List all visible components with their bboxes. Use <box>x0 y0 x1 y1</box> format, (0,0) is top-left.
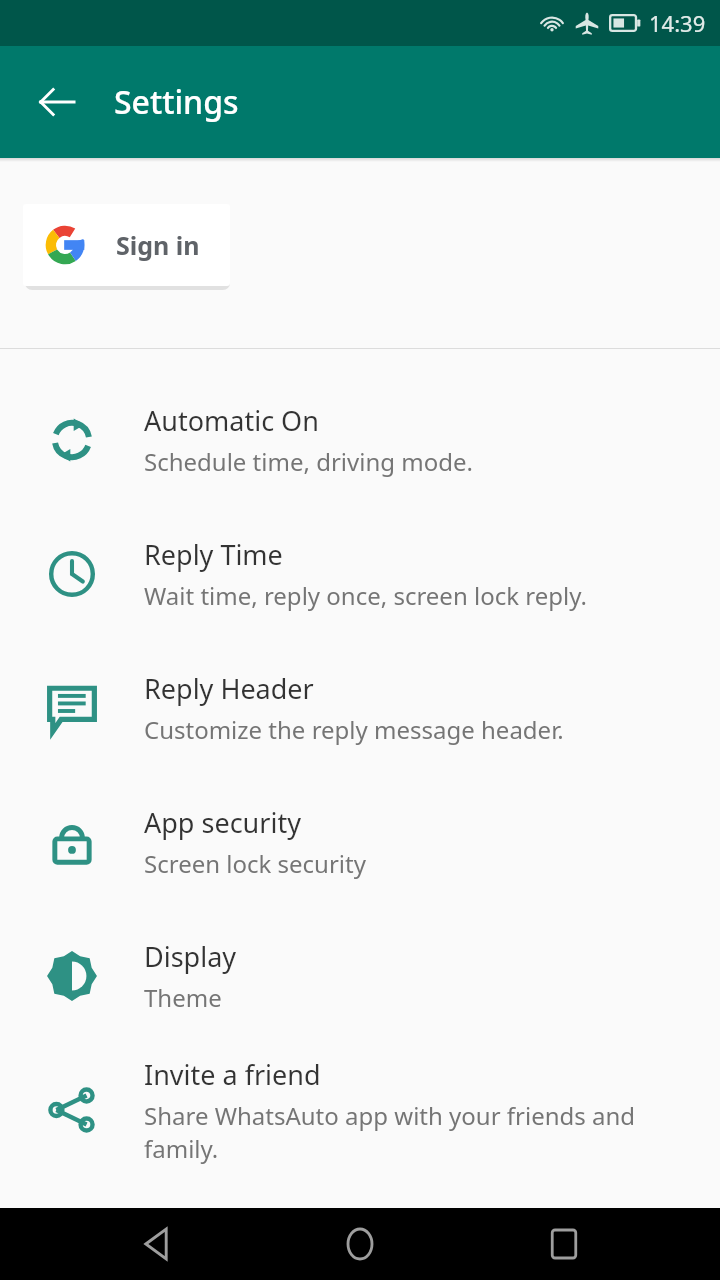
button[interactable]: Recent apps <box>516 1208 612 1280</box>
staticText: Share WhatsAuto app with your friends an… <box>144 1099 704 1165</box>
button[interactable]: Invite a friend <box>0 1043 720 1177</box>
staticText: Automatic On <box>144 402 319 439</box>
button[interactable]: Back <box>20 65 94 139</box>
staticText: Reply Time <box>144 536 283 573</box>
staticText: Schedule time, driving mode. <box>144 445 473 478</box>
staticText: Wait time, reply once, screen lock reply… <box>144 579 587 612</box>
staticText: Display <box>144 938 237 975</box>
staticText: Customize the reply message header. <box>144 713 564 746</box>
button[interactable]: Display <box>0 909 720 1043</box>
button[interactable]: Back <box>108 1208 204 1280</box>
staticText: Theme <box>144 981 222 1014</box>
button[interactable]: Automatic On <box>0 373 720 507</box>
staticText: Screen lock security <box>144 847 366 880</box>
staticText: Reply Header <box>144 670 314 707</box>
button[interactable]: Home <box>312 1208 408 1280</box>
button[interactable]: App security <box>0 775 720 909</box>
button[interactable]: Reply Header <box>0 641 720 775</box>
button[interactable]: Sign in <box>23 204 230 286</box>
button[interactable]: Reply Time <box>0 507 720 641</box>
staticText: Sign in <box>116 228 200 262</box>
staticText: Invite a friend <box>144 1056 321 1093</box>
staticText: App security <box>144 804 301 841</box>
staticText: Settings <box>114 80 239 124</box>
staticText: 14:39 <box>649 8 706 38</box>
